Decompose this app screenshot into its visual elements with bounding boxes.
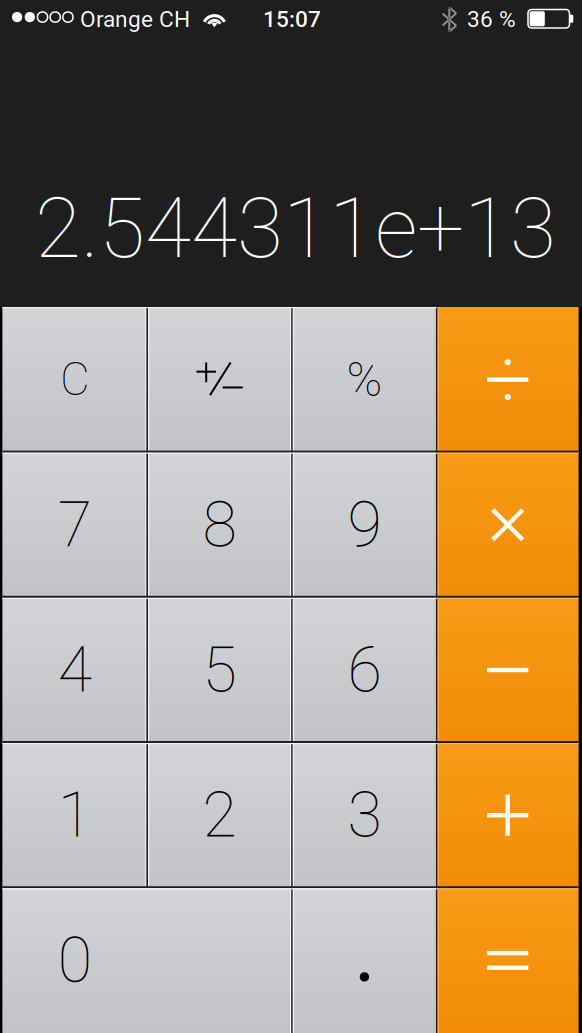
staticText: 0 [58,924,92,997]
button[interactable]: Divide [437,307,579,452]
staticText: 7 [58,488,92,561]
button[interactable]: 4 [2,597,147,743]
staticText: 2 [203,778,237,852]
button[interactable]: 2 [147,743,292,888]
staticText: Orange CH [80,6,190,33]
staticText: % [346,351,382,408]
button[interactable]: 9 [292,452,437,597]
button[interactable]: Percent [292,307,437,452]
staticText: 3 [347,778,381,852]
staticText: 15:07 [263,6,321,33]
button[interactable]: Plus minus [147,307,292,452]
staticText: 2.544311e+13 [35,179,556,277]
staticText: 6 [347,633,381,707]
staticText: 8 [203,488,237,561]
staticText: 1 [58,778,92,852]
staticText: 4 [58,633,92,707]
button[interactable]: Equals [437,888,579,1033]
button[interactable]: Decimal point [292,888,437,1033]
button[interactable]: 7 [2,452,147,597]
button[interactable]: 8 [147,452,292,597]
staticText: 36 % [467,6,516,33]
button[interactable]: Clear [2,307,147,452]
button[interactable]: 3 [292,743,437,888]
button[interactable]: 0 [2,888,292,1033]
button[interactable]: 6 [292,597,437,743]
button[interactable]: 1 [2,743,147,888]
button[interactable]: Minus [437,597,579,743]
button[interactable]: Multiply [437,452,579,597]
staticText: 5 [203,633,237,707]
staticText: 9 [347,488,381,561]
staticText: C [60,353,89,406]
button[interactable]: Plus [437,743,579,888]
button[interactable]: 5 [147,597,292,743]
